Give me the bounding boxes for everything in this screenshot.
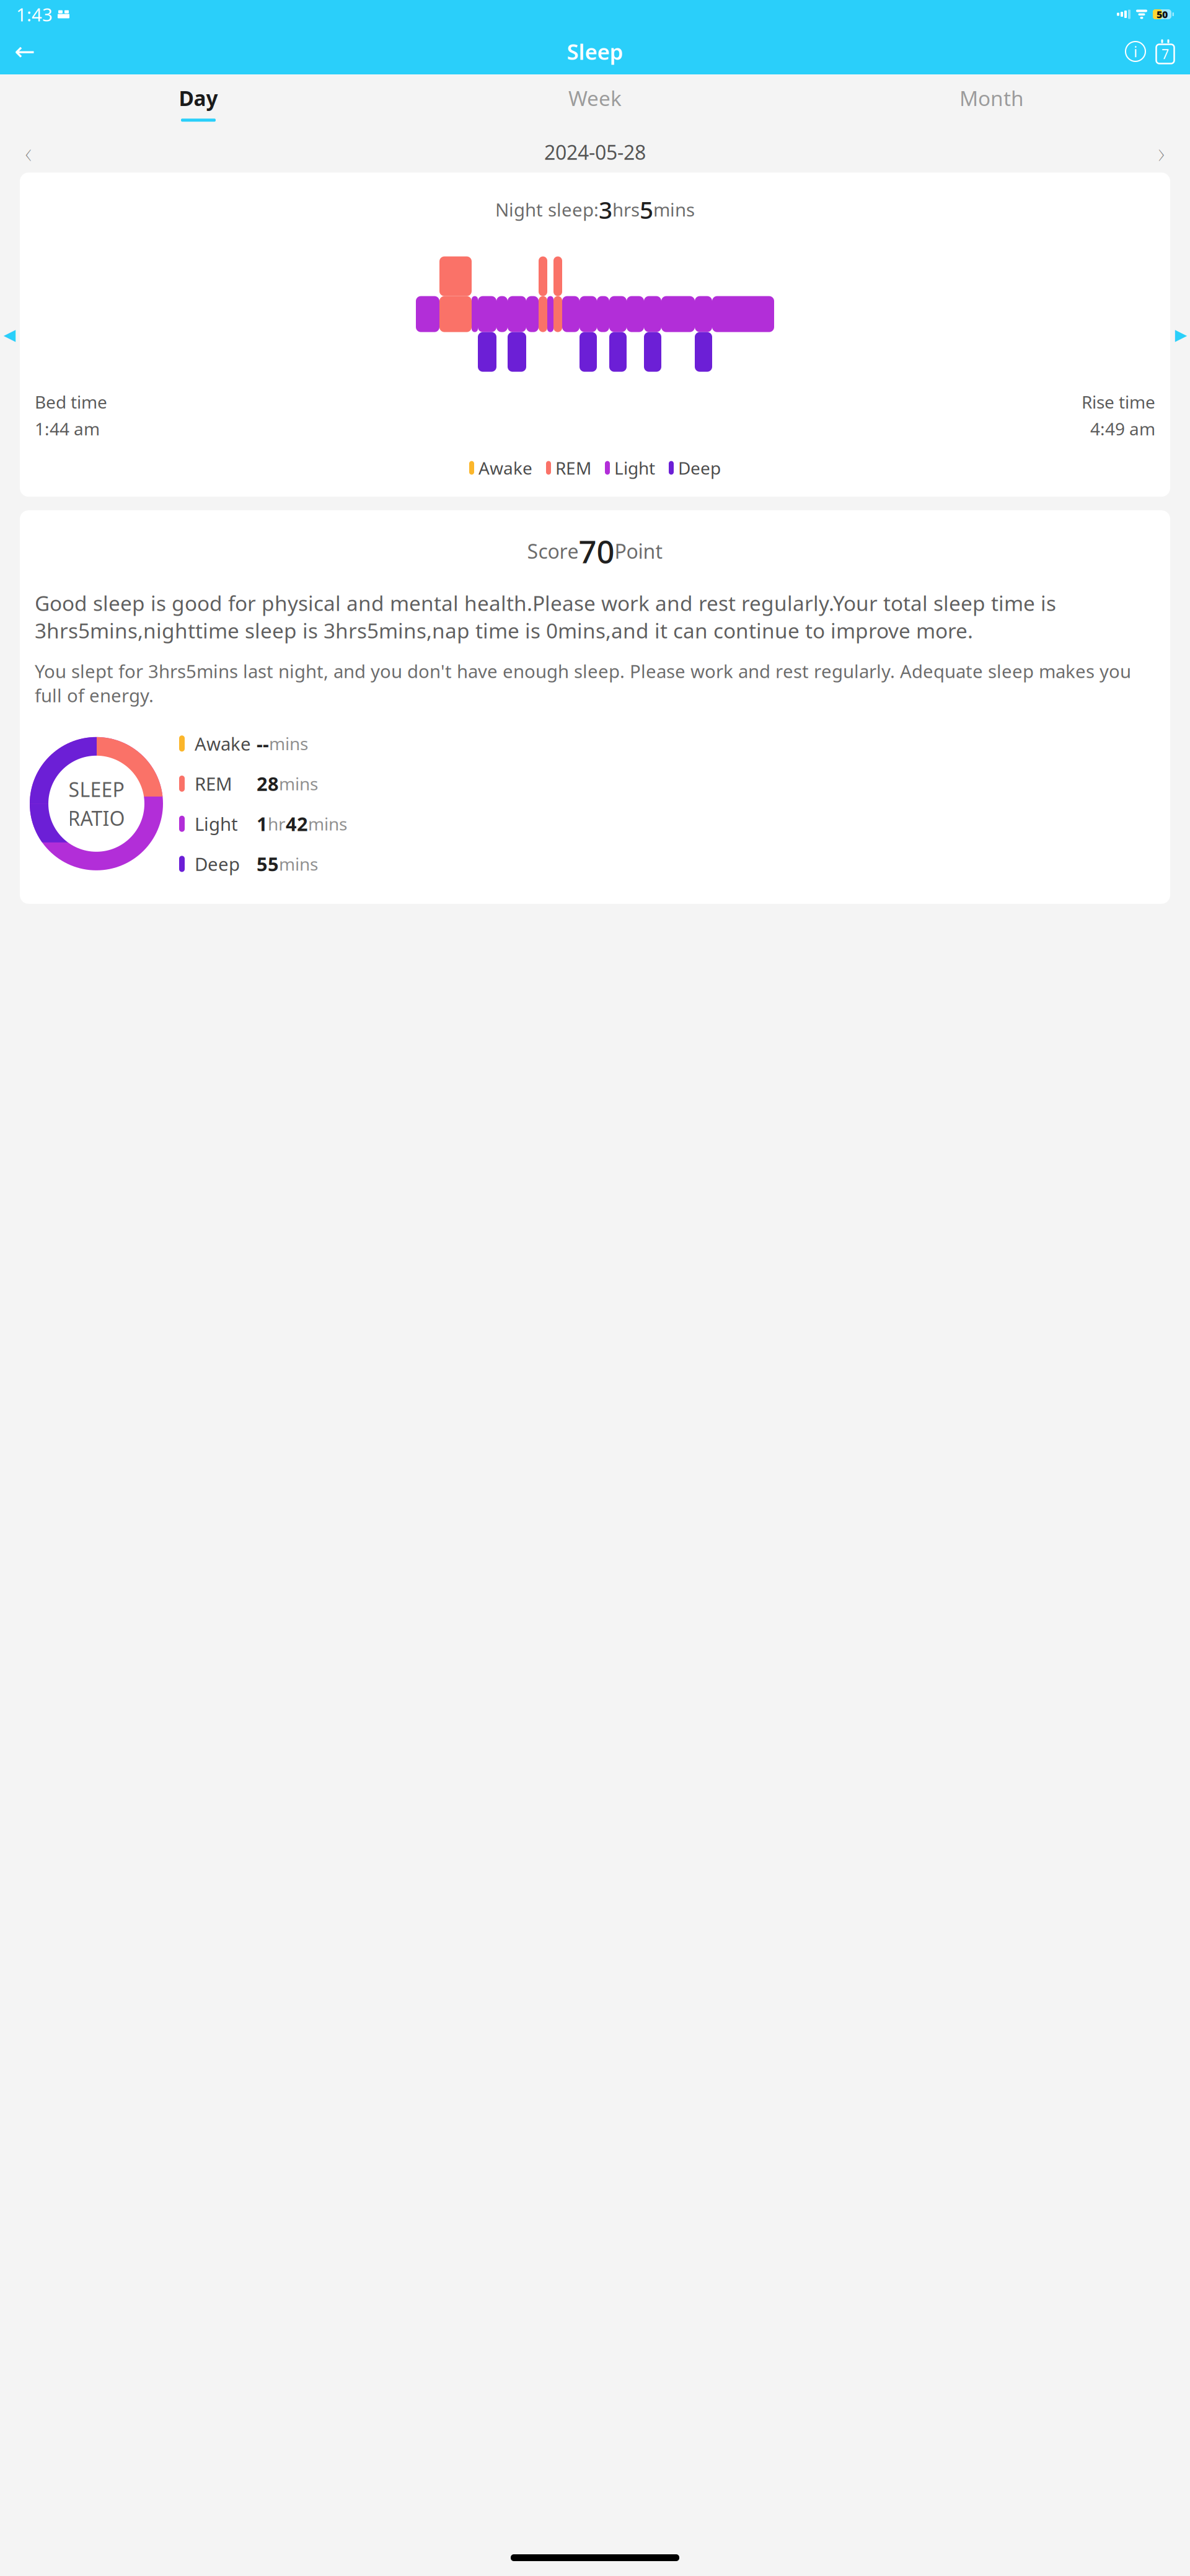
staticText: mins xyxy=(269,732,308,755)
staticText: 70 xyxy=(579,530,615,572)
staticText: Bed time xyxy=(35,390,107,413)
staticText: Point xyxy=(615,538,663,564)
staticText: i xyxy=(1134,42,1137,61)
staticText: hrs xyxy=(612,197,640,222)
staticText: Good sleep is good for physical and ment… xyxy=(35,589,1056,644)
staticText: 5 xyxy=(640,194,653,225)
staticText: hr xyxy=(268,812,286,835)
staticText: 1 xyxy=(257,811,268,836)
staticText: Deep xyxy=(195,852,240,876)
staticText: 2024-05-28 xyxy=(544,139,646,165)
staticText: 28 xyxy=(257,771,279,796)
staticText: You slept for 3hrs5mins last night, and … xyxy=(35,659,1131,707)
staticText: 3 xyxy=(599,194,612,225)
staticText: ‹ xyxy=(25,132,32,172)
button[interactable]: Day xyxy=(0,74,397,132)
staticText: Light xyxy=(195,812,238,836)
staticText: ← xyxy=(14,37,35,66)
staticText: Awake xyxy=(195,731,251,756)
button[interactable]: Back xyxy=(10,37,40,66)
staticText: Month xyxy=(959,84,1024,112)
staticText: Score xyxy=(527,538,579,564)
button[interactable]: Information xyxy=(1121,37,1150,66)
staticText: 42 xyxy=(286,811,308,836)
button[interactable]: Previous night xyxy=(0,320,19,349)
staticText: › xyxy=(1158,132,1165,172)
staticText: Light xyxy=(614,456,655,479)
staticText: Deep xyxy=(678,456,721,479)
staticText: SLEEP xyxy=(68,776,124,802)
staticText: REM xyxy=(555,456,591,479)
staticText: RATIO xyxy=(68,805,125,831)
button[interactable]: Next night xyxy=(1171,320,1190,349)
button[interactable]: Calendar xyxy=(1150,37,1180,66)
button[interactable]: Next day xyxy=(1144,135,1179,169)
staticText: Sleep xyxy=(567,37,623,66)
staticText: Night sleep: xyxy=(495,197,599,222)
staticText: Day xyxy=(179,84,218,112)
button[interactable]: Previous day xyxy=(11,135,46,169)
staticText: ▶ xyxy=(1175,326,1187,344)
staticText: mins xyxy=(308,812,347,835)
staticText: -- xyxy=(257,731,269,756)
staticText: Awake xyxy=(478,456,532,479)
staticText: 50 xyxy=(1157,8,1168,21)
staticText: 1:43 xyxy=(16,2,53,26)
staticText: mins xyxy=(279,852,318,875)
staticText: 7 xyxy=(1161,45,1169,63)
staticText: mins xyxy=(653,197,695,222)
staticText: Week xyxy=(568,84,622,112)
staticText: 1:44 am xyxy=(35,417,100,440)
button[interactable]: Month xyxy=(793,74,1190,132)
button[interactable]: Week xyxy=(397,74,793,132)
staticText: 55 xyxy=(257,851,279,877)
staticText: Rise time xyxy=(1082,390,1155,413)
staticText: ◀ xyxy=(3,326,15,344)
staticText: mins xyxy=(279,772,318,795)
staticText: REM xyxy=(195,772,232,796)
staticText: 4:49 am xyxy=(1090,417,1155,440)
